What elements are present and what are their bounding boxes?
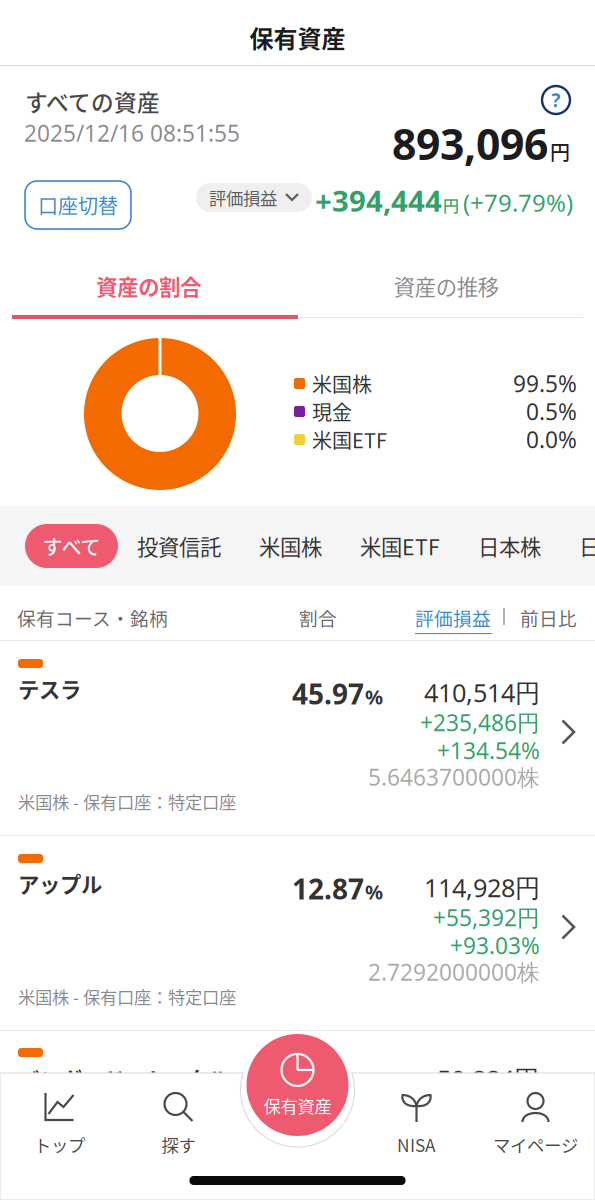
staticText: 米国株 - 保有口座：特定口座 — [18, 789, 236, 814]
staticText: 前日比 — [520, 604, 577, 631]
staticText: トップ — [34, 1132, 85, 1157]
staticText: 割合 — [299, 604, 337, 631]
button[interactable]: 探す — [119, 1090, 238, 1157]
staticText: 円 — [443, 193, 459, 216]
staticText: マイページ — [493, 1132, 578, 1157]
staticText: 50,884円 — [437, 1062, 539, 1096]
button[interactable]: 口座切替 — [25, 181, 131, 229]
staticText: 保有資産 — [263, 1093, 331, 1118]
button[interactable]: 保有資産 — [246, 1034, 348, 1136]
staticText: 0.5% — [526, 396, 577, 426]
staticText: 0.0% — [526, 424, 577, 454]
staticText: テスラ — [18, 673, 81, 704]
staticText: 米国株 — [312, 369, 372, 398]
staticText: +134.54% — [437, 735, 540, 765]
button[interactable]: すべて — [25, 524, 118, 568]
button[interactable]: テスラ — [0, 641, 595, 836]
staticText: 12.87 — [292, 870, 364, 907]
staticText: +93.03% — [450, 930, 540, 960]
staticText: 893,096 — [392, 115, 548, 172]
staticText: 評価損益 — [415, 604, 491, 631]
staticText: +235,486円 — [420, 707, 540, 737]
staticText: 資産の割合 — [96, 271, 201, 301]
staticText: 現金 — [312, 397, 352, 426]
button[interactable]: 日本株 — [459, 524, 560, 568]
staticText: 99.5% — [513, 368, 577, 398]
staticText: 保有資産 — [249, 20, 345, 55]
staticText: バンガード・トータル — [18, 1063, 229, 1094]
staticText: 5.6463700000株 — [368, 762, 540, 792]
staticText: 45.97 — [292, 675, 364, 712]
staticText: (+79.79%) — [463, 187, 573, 218]
staticText: 投資信託 — [137, 531, 221, 561]
staticText: 米国株 - 保有口座：特定口座 — [18, 984, 236, 1009]
staticText: 評価損益 — [209, 185, 277, 210]
staticText: 114,928円 — [424, 871, 540, 904]
button[interactable]: 米国株 — [240, 524, 341, 568]
button[interactable]: アップル — [0, 836, 595, 1031]
staticText: 日本株 — [478, 531, 541, 561]
button[interactable]: 評価損益 — [196, 183, 312, 212]
staticText: 日本 — [579, 531, 595, 561]
button[interactable]: 資産の推移 — [297, 255, 595, 317]
button[interactable]: バンガード・トータル — [18, 1048, 539, 1093]
staticText: 探す — [161, 1132, 195, 1157]
button[interactable]: ヘルプ — [538, 82, 574, 118]
staticText: 410,514円 — [424, 676, 540, 709]
button[interactable]: 日本 — [560, 524, 595, 568]
staticText: すべて — [42, 531, 100, 560]
button[interactable]: 投資信託 — [118, 524, 240, 568]
button[interactable]: NISA — [357, 1090, 476, 1157]
staticText: NISA — [397, 1132, 436, 1157]
staticText: アップル — [18, 868, 102, 899]
staticText: 米国ETF — [360, 531, 440, 561]
staticText: % — [365, 683, 383, 710]
staticText: +394,444 — [315, 181, 442, 220]
staticText: 口座切替 — [38, 190, 118, 219]
staticText: 米国ETF — [312, 425, 387, 454]
staticText: ? — [551, 88, 560, 112]
staticText: 2.7292000000株 — [368, 957, 540, 987]
staticText: 2025/12/16 08:51:55 — [24, 118, 240, 148]
button[interactable]: 米国ETF — [341, 524, 459, 568]
staticText: 円 — [550, 137, 570, 166]
staticText: すべての資産 — [25, 85, 160, 118]
button[interactable]: トップ — [0, 1090, 119, 1157]
button[interactable]: マイページ — [476, 1090, 595, 1157]
button[interactable]: 資産の割合 — [0, 255, 297, 317]
staticText: +55,392円 — [433, 902, 540, 932]
staticText: 米国株 — [259, 531, 322, 561]
staticText: 資産の推移 — [394, 271, 499, 301]
staticText: 保有コース・銘柄 — [17, 604, 168, 631]
staticText: % — [365, 878, 383, 905]
